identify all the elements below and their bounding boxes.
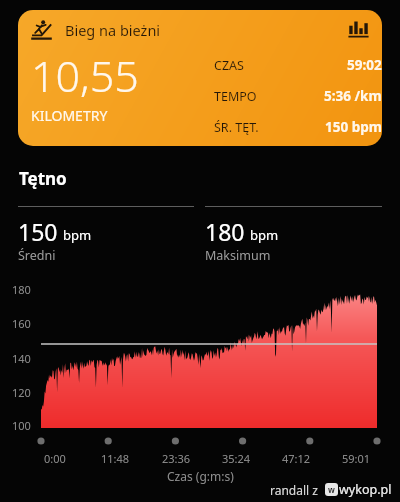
staticText: 120 [12, 385, 31, 400]
staticText: 5:36 /km [324, 87, 382, 105]
staticText: 10,55 [31, 46, 139, 105]
staticText: 100 [12, 418, 31, 433]
staticText: 150 bpm [325, 118, 382, 136]
staticText: ŚR. TĘT. [214, 119, 259, 136]
staticText: CZAS [214, 57, 244, 74]
staticText: 11:48 [101, 451, 130, 466]
staticText: Czas (g:m:s) [167, 468, 234, 484]
staticText: KILOMETRY [31, 106, 108, 125]
button[interactable]: Show charts [348, 19, 369, 40]
staticText: Maksimum [205, 247, 271, 264]
button[interactable]: 180 [205, 206, 382, 264]
staticText: 140 [12, 351, 31, 366]
staticText: 59:01 [342, 451, 371, 466]
staticText: 35:24 [222, 451, 251, 466]
staticText: 180 [12, 282, 31, 297]
staticText: wykop.pl [339, 481, 392, 498]
staticText: TEMPO [214, 88, 257, 105]
staticText: 0:00 [44, 451, 66, 466]
staticText: Bieg na bieżni [65, 20, 161, 40]
staticText: 160 [12, 316, 31, 331]
staticText: Średni [18, 247, 56, 264]
staticText: randall z [270, 482, 318, 498]
staticText: 150 [18, 216, 58, 247]
staticText: bpm [250, 226, 279, 244]
staticText: bpm [63, 226, 92, 244]
button[interactable]: Treadmill run [18, 10, 382, 146]
button[interactable]: 150 [18, 206, 194, 264]
staticText: w [328, 484, 335, 495]
staticText: 47:12 [282, 451, 311, 466]
staticText: 59:02 [347, 56, 382, 74]
staticText: Tętno [19, 167, 67, 190]
other: Treadmill run [31, 19, 52, 40]
staticText: 23:36 [162, 451, 191, 466]
staticText: 180 [205, 216, 245, 247]
